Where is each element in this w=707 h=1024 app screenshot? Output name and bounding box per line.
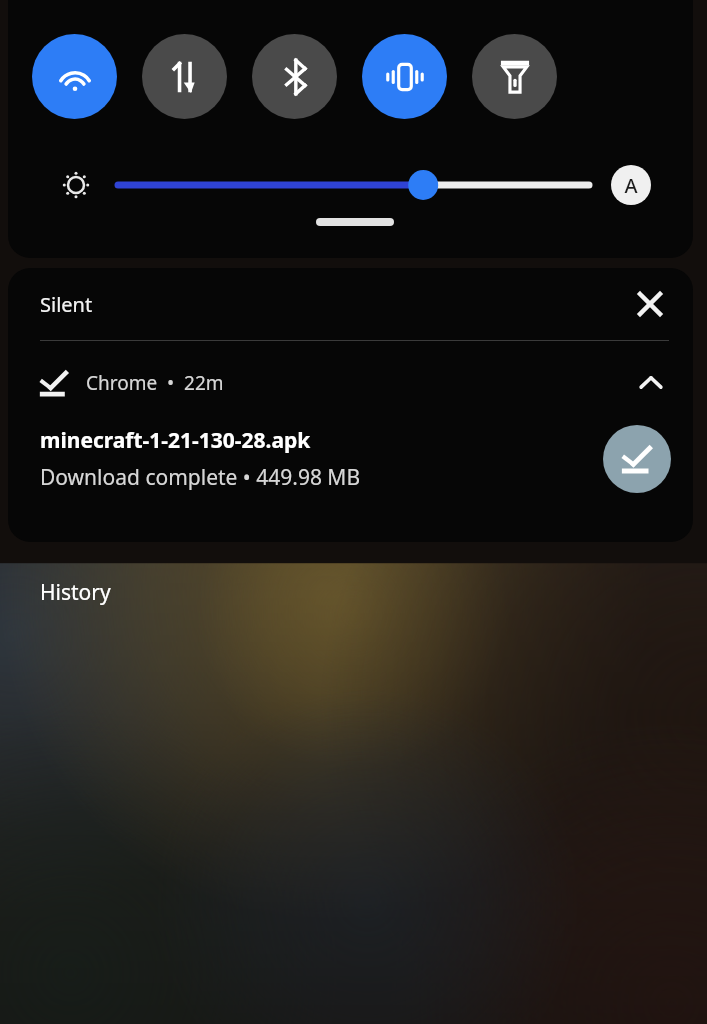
staticText: Download complete • 449.98 MB xyxy=(40,463,361,492)
button[interactable]: Auto brightness xyxy=(611,165,651,205)
button[interactable]: History xyxy=(40,578,111,607)
staticText: Silent xyxy=(40,291,93,318)
button[interactable]: Chrome • 22m xyxy=(8,341,693,542)
button[interactable]: Mobile data xyxy=(142,34,227,119)
button[interactable]: Open download xyxy=(603,425,671,493)
button[interactable]: Collapse notification xyxy=(631,363,671,403)
staticText: Chrome • 22m xyxy=(86,370,224,396)
staticText: A xyxy=(624,172,638,199)
button[interactable]: Bluetooth xyxy=(252,34,337,119)
button[interactable]: Wi-Fi xyxy=(32,34,117,119)
button[interactable]: Vibrate xyxy=(362,34,447,119)
button[interactable]: Expand quick settings xyxy=(316,218,394,226)
button[interactable]: Flashlight xyxy=(472,34,557,119)
staticText: minecraft-1-21-130-28.apk xyxy=(40,426,311,455)
button[interactable]: Clear silent notifications xyxy=(629,283,671,325)
button[interactable] xyxy=(116,163,591,207)
button[interactable]: Brightness xyxy=(54,163,98,207)
